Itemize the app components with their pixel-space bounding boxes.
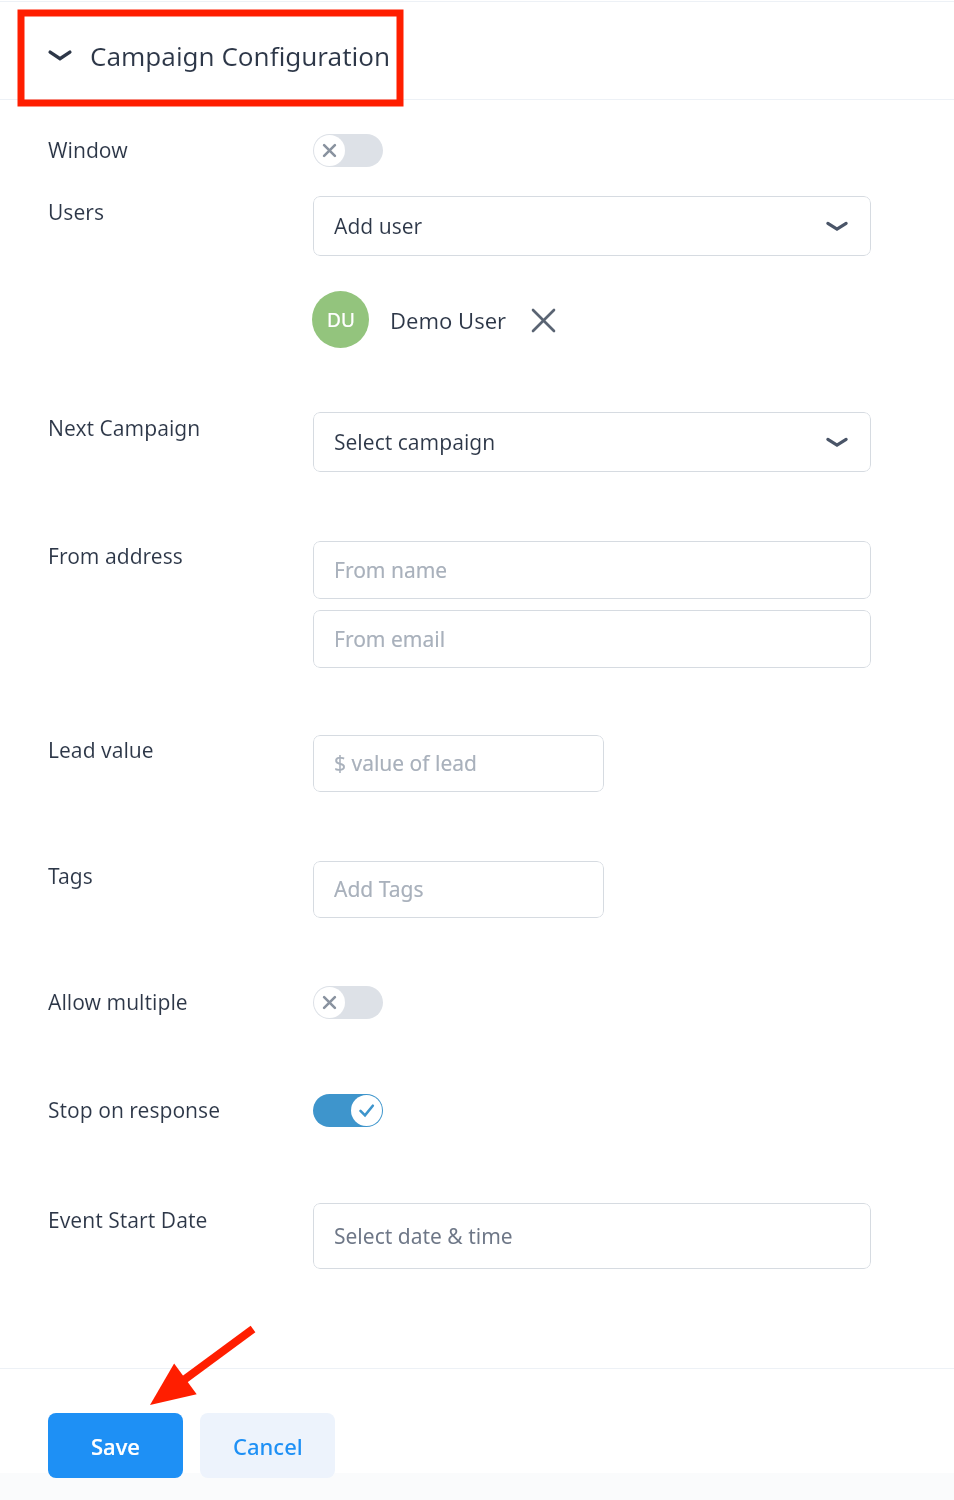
staticText: Window [48, 136, 128, 165]
button[interactable]: Add Tags [313, 861, 604, 918]
button[interactable]: Cancel [200, 1413, 335, 1478]
staticText: Save [91, 1431, 140, 1461]
staticText: Stop on response [48, 1096, 220, 1125]
staticText: Campaign Configuration [90, 38, 391, 73]
button[interactable]: From name [313, 541, 871, 599]
staticText: Select date & time [334, 1222, 513, 1251]
button[interactable]: Toggle on [313, 1094, 383, 1127]
staticText: Event Start Date [48, 1206, 208, 1235]
button[interactable]: Toggle off [313, 134, 383, 167]
staticText: Allow multiple [48, 988, 188, 1017]
button[interactable]: $ value of lead [313, 735, 604, 792]
staticText: Add Tags [334, 875, 424, 904]
button[interactable]: Campaign Configuration [0, 25, 954, 85]
staticText: Next Campaign [48, 414, 201, 443]
staticText: $ value of lead [334, 749, 477, 778]
staticText: From address [48, 542, 183, 571]
button[interactable]: From email [313, 610, 871, 668]
staticText: From name [334, 556, 448, 585]
button[interactable]: Select campaign [313, 412, 871, 472]
button[interactable]: Select date & time [313, 1203, 871, 1269]
staticText: Add user [334, 212, 423, 241]
staticText: Cancel [233, 1431, 303, 1461]
staticText: Lead value [48, 736, 154, 765]
staticText: From email [334, 625, 446, 654]
staticText: Demo User [390, 305, 507, 335]
button[interactable]: Remove Demo User [528, 305, 558, 335]
button[interactable]: Add user [313, 196, 871, 256]
button[interactable]: Toggle off [313, 986, 383, 1019]
button[interactable]: Save [48, 1413, 183, 1478]
button[interactable]: DU [312, 291, 558, 348]
staticText: Users [48, 198, 104, 227]
staticText: Select campaign [334, 428, 496, 457]
staticText: Tags [48, 862, 93, 891]
staticText: DU [327, 307, 355, 333]
